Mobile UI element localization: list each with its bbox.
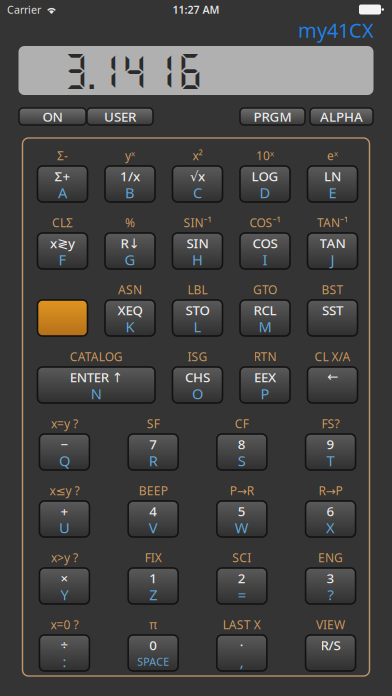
staticText: CHS — [185, 368, 210, 386]
button[interactable]: R↓ — [105, 233, 155, 269]
staticText: K — [125, 317, 134, 336]
staticText: CF — [235, 415, 249, 431]
button[interactable]: 6 — [306, 501, 356, 537]
staticText: R — [149, 451, 158, 470]
staticText: 1/x — [120, 167, 140, 185]
staticText: √x — [190, 167, 205, 185]
button[interactable]: SST — [307, 300, 357, 336]
staticText: LOG — [251, 167, 278, 185]
staticText: SIN⁻¹ — [183, 214, 211, 230]
button[interactable]: ON — [19, 108, 86, 125]
staticText: R/S — [321, 636, 341, 654]
staticText: CATALOG — [70, 348, 123, 364]
staticText: A — [58, 183, 67, 202]
button[interactable]: 0 — [128, 635, 178, 671]
staticText: 6 — [327, 502, 335, 520]
staticText: 2 — [238, 569, 246, 587]
staticText: O — [192, 384, 203, 403]
staticText: FS? — [322, 415, 340, 431]
button[interactable]: ÷ — [39, 635, 89, 671]
button[interactable]: 7 — [128, 434, 178, 470]
staticText: RCL — [253, 301, 276, 319]
staticText: 10ˣ — [256, 147, 274, 163]
button[interactable]: EEX — [240, 367, 290, 403]
button[interactable]: R/S — [306, 635, 356, 671]
staticText: Σ- — [57, 147, 68, 163]
button[interactable]: x≷y — [37, 233, 87, 269]
staticText: ISG — [187, 348, 207, 364]
staticText: SCI — [232, 549, 251, 565]
button[interactable]: ← — [307, 367, 357, 403]
button[interactable]: · — [217, 635, 267, 671]
staticText: C — [193, 183, 202, 202]
button[interactable]: STO — [172, 300, 222, 336]
button[interactable]: COS — [240, 233, 290, 269]
button[interactable]: Σ+ — [37, 166, 87, 202]
staticText: ENG — [318, 549, 343, 565]
staticText: PRGM — [253, 108, 291, 125]
staticText: 3 — [327, 569, 335, 587]
staticText: USER — [104, 108, 136, 125]
staticText: XEQ — [117, 301, 142, 319]
staticText: VIEW — [316, 616, 345, 632]
staticText: STO — [185, 301, 209, 319]
button[interactable]: 9 — [306, 434, 356, 470]
button[interactable]: − — [39, 434, 89, 470]
staticText: 9 — [327, 435, 335, 453]
button[interactable]: 1 — [128, 568, 178, 604]
button[interactable]: PRGM — [240, 108, 305, 125]
staticText: W — [235, 518, 249, 537]
staticText: P — [260, 384, 269, 403]
staticText: BST — [321, 281, 343, 297]
staticText: 4 — [149, 502, 157, 520]
staticText: = — [238, 585, 246, 604]
button[interactable]: √x — [172, 166, 222, 202]
staticText: F — [58, 250, 66, 269]
staticText: TAN — [319, 234, 345, 252]
staticText: D — [259, 183, 270, 202]
staticText: x² — [192, 147, 202, 163]
staticText: SST — [322, 301, 343, 319]
button[interactable]: XEQ — [105, 300, 155, 336]
staticText: SIN — [186, 234, 208, 252]
staticText: ALPHA — [320, 108, 363, 125]
button[interactable]: LN — [307, 166, 357, 202]
staticText: % — [125, 214, 135, 230]
staticText: yˣ — [125, 147, 135, 163]
button[interactable]: 4 — [128, 501, 178, 537]
button[interactable]: 2 — [217, 568, 267, 604]
button[interactable]: ENTER ↑ — [37, 367, 155, 403]
staticText: Q — [59, 451, 70, 470]
button[interactable]: 1/x — [105, 166, 155, 202]
staticText: LAST X — [223, 616, 261, 632]
button[interactable]: × — [39, 568, 89, 604]
staticText: Carrier — [7, 2, 41, 17]
button[interactable]: RCL — [240, 300, 290, 336]
button[interactable]: Shift — [37, 300, 87, 336]
staticText: RTN — [253, 348, 276, 364]
staticText: , — [240, 652, 244, 671]
staticText: E — [328, 183, 336, 202]
staticText: 0 — [149, 636, 157, 654]
staticText: ÷ — [60, 636, 68, 654]
staticText: eˣ — [327, 147, 338, 163]
staticText: N — [91, 384, 102, 403]
staticText: S — [238, 451, 246, 470]
staticText: ← — [327, 369, 338, 384]
staticText: COS⁻¹ — [249, 214, 280, 230]
button[interactable]: 3 — [306, 568, 356, 604]
button[interactable]: ALPHA — [310, 108, 373, 125]
button[interactable]: CHS — [172, 367, 222, 403]
staticText: GTO — [253, 281, 277, 297]
button[interactable]: USER — [87, 108, 153, 125]
button[interactable]: + — [39, 501, 89, 537]
staticText: J — [330, 250, 334, 269]
button[interactable]: SIN — [172, 233, 222, 269]
button[interactable]: LOG — [240, 166, 290, 202]
staticText: x≷y — [50, 234, 75, 252]
button[interactable]: 8 — [217, 434, 267, 470]
staticText: U — [59, 518, 70, 537]
button[interactable]: 5 — [217, 501, 267, 537]
button[interactable]: TAN — [307, 233, 357, 269]
staticText: ? — [328, 585, 334, 604]
